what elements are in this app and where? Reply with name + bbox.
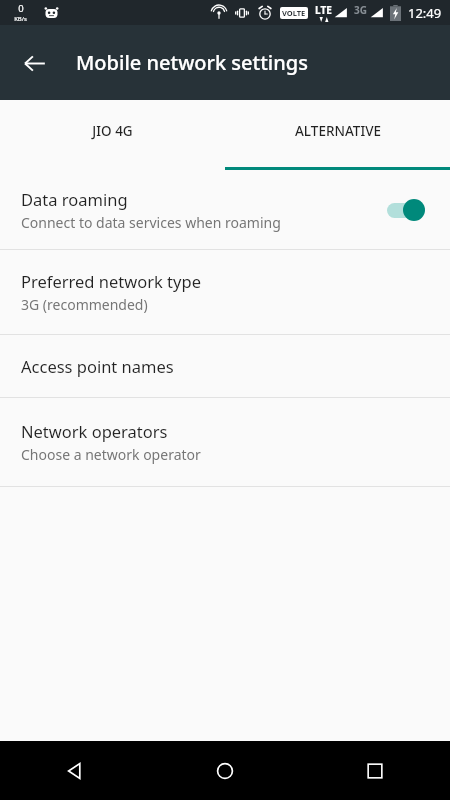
staticText: ALTERNATIVE [295, 122, 381, 140]
staticText: JIO 4G [92, 122, 133, 140]
staticText: 3G [354, 3, 367, 17]
button[interactable]: Access point names [0, 335, 450, 397]
staticText: Network operators [21, 420, 168, 442]
staticText: Choose a network operator [21, 445, 201, 464]
staticText: Data roaming [21, 188, 128, 210]
staticText: Access point names [21, 355, 174, 377]
staticText: 3G (recommended) [21, 295, 148, 314]
button[interactable]: Recent apps [300, 741, 450, 800]
button[interactable]: ALTERNATIVE [225, 100, 450, 170]
staticText: Preferred network type [21, 270, 201, 292]
button[interactable]: Preferred network type [0, 250, 450, 334]
staticText: 12:49 [408, 4, 442, 22]
button[interactable]: Back [0, 741, 150, 800]
staticText: Mobile network settings [76, 49, 308, 76]
staticText: VOLTE [282, 8, 306, 18]
staticText: LTE [315, 3, 332, 17]
button[interactable]: Navigate up [12, 41, 56, 85]
button[interactable]: Network operators [0, 398, 450, 486]
staticText: Connect to data services when roaming [21, 213, 281, 232]
staticText: KB/s [14, 15, 27, 23]
staticText: 0 [18, 2, 24, 15]
button[interactable]: JIO 4G [0, 100, 225, 170]
button[interactable]: Home [150, 741, 300, 800]
button[interactable]: Data roaming [0, 170, 450, 249]
button[interactable]: Data roaming switch, on [380, 194, 434, 226]
